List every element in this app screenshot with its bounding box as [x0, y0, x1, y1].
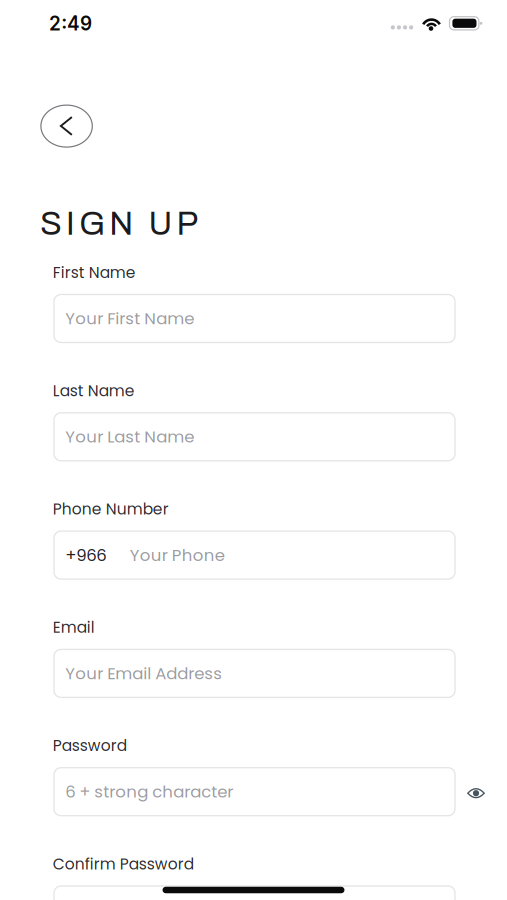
- staticText: Phone Number: [53, 498, 169, 520]
- staticText: Last Name: [53, 380, 135, 402]
- staticText: 2:49: [49, 12, 92, 35]
- button[interactable]: +966: [54, 531, 455, 579]
- staticText: Confirm Password: [53, 853, 194, 875]
- staticText: +966: [65, 543, 106, 567]
- staticText: Email: [53, 617, 95, 638]
- button[interactable]: Show password: [466, 786, 486, 801]
- staticText: Your Phone: [130, 543, 225, 567]
- staticText: Your Last Name: [65, 425, 194, 448]
- button[interactable]: Your Email Address: [54, 649, 455, 697]
- button[interactable]: Your Last Name: [54, 413, 455, 461]
- button[interactable]: Back: [40, 104, 93, 148]
- button[interactable]: 6 + strong character: [54, 768, 455, 816]
- button[interactable]: Your First Name: [54, 294, 455, 342]
- staticText: SIGN UP: [40, 206, 199, 242]
- staticText: Password: [53, 735, 127, 757]
- button[interactable]: Your Password: [54, 886, 455, 900]
- staticText: Your First Name: [65, 307, 194, 330]
- staticText: First Name: [53, 262, 136, 283]
- staticText: 6 + strong character: [65, 780, 233, 803]
- staticText: Your Email Address: [65, 662, 222, 685]
